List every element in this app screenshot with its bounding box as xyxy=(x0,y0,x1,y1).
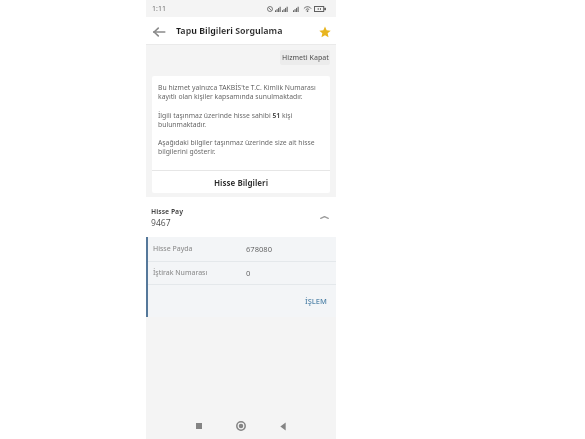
staticText: Hisse Payda xyxy=(153,244,193,254)
staticText: bulunmaktadır. xyxy=(158,120,207,129)
button[interactable]: Home xyxy=(220,413,262,439)
staticText: Hisse Pay xyxy=(151,207,184,216)
staticText: İştirak Numarası xyxy=(153,268,208,278)
staticText: 1:11 xyxy=(152,4,166,14)
staticText: İlgili taşınmaz üzerinde hisse sahibi 51… xyxy=(158,111,293,120)
staticText: kayıtlı olan kişiler kapsamında sunulmak… xyxy=(158,92,303,101)
staticText: İŞLEM xyxy=(305,296,327,306)
staticText: 9467 xyxy=(151,217,171,229)
button[interactable]: Favorite xyxy=(314,17,336,44)
button[interactable]: Hisse Bilgileri xyxy=(152,171,330,193)
button[interactable]: Back xyxy=(146,17,172,44)
button[interactable]: Back xyxy=(262,413,304,439)
staticText: 0 xyxy=(246,268,251,278)
staticText: bilgilerini gösterir. xyxy=(158,147,216,156)
staticText: 678080 xyxy=(246,244,273,254)
staticText: Tapu Bilgileri Sorgulama xyxy=(176,25,283,37)
staticText: Hizmeti Kapat xyxy=(282,53,329,63)
staticText: Aşağıdaki bilgiler taşınmaz üzerinde siz… xyxy=(158,138,315,147)
button[interactable]: Hizmeti Kapat xyxy=(280,50,330,65)
button[interactable]: Recent apps xyxy=(178,413,220,439)
staticText: Hisse Bilgileri xyxy=(214,177,269,188)
button[interactable]: Hisse Pay xyxy=(146,197,336,237)
button[interactable]: İŞLEM xyxy=(296,290,336,312)
staticText: Bu hizmet yalnızca TAKBİS'te T.C. Kimlik… xyxy=(158,83,316,92)
